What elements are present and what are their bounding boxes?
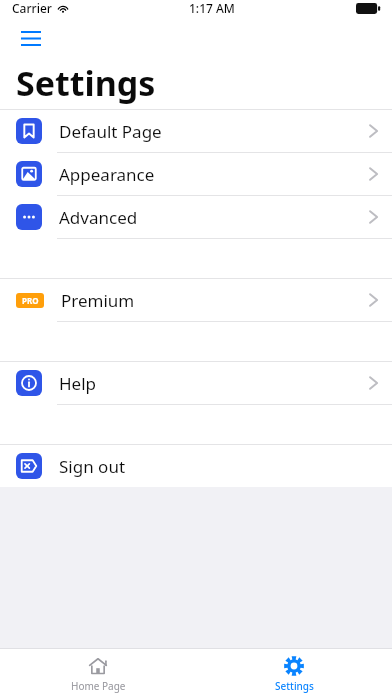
button[interactable]: Advanced [0,196,392,238]
staticText: Advanced [59,206,138,229]
button[interactable]: Home Page [38,652,158,693]
staticText: Carrier [12,0,52,16]
button[interactable]: Settings [234,652,354,693]
button[interactable]: Appearance [0,153,392,195]
staticText: Default Page [59,120,162,143]
staticText: Help [59,372,97,395]
button[interactable]: Help [0,362,392,404]
button[interactable]: Sign out [0,445,392,487]
staticText: Appearance [59,163,155,186]
button[interactable]: PRO [0,279,392,321]
staticText: Settings [16,60,156,106]
staticText: Home Page [71,679,126,693]
staticText: PRO [22,295,39,306]
staticText: Settings [275,679,314,693]
staticText: Sign out [59,455,126,478]
staticText: 1:17 AM [189,0,235,16]
button[interactable]: Menu [14,21,48,55]
button[interactable]: Default Page [0,110,392,152]
staticText: Premium [61,289,135,312]
